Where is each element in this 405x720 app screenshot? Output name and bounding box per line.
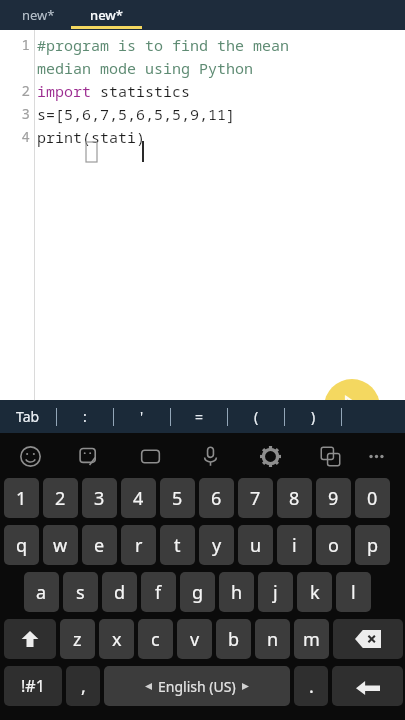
staticText: d — [114, 580, 126, 605]
button[interactable]: ' — [114, 400, 170, 433]
staticText: ) — [311, 407, 316, 426]
button[interactable]: 2 — [43, 478, 78, 518]
button[interactable]: b — [216, 619, 251, 659]
staticText: new* — [90, 6, 123, 24]
button[interactable]: 1 — [4, 478, 39, 518]
staticText: f — [155, 580, 162, 605]
button[interactable]: j — [258, 572, 293, 612]
button[interactable]: n — [255, 619, 290, 659]
staticText: s=[5,6,7,5,6,5,5,9,11] — [37, 104, 236, 124]
staticText: k — [310, 580, 320, 605]
button[interactable]: , — [66, 666, 100, 706]
staticText: median mode using Python — [37, 58, 254, 78]
staticText: #program is to find the mean — [37, 35, 290, 55]
button[interactable]: 0 — [355, 478, 390, 518]
button[interactable]: Tab — [0, 400, 56, 433]
button[interactable]: 4 — [121, 478, 156, 518]
staticText: , — [81, 674, 86, 699]
button[interactable]: Settings — [254, 440, 286, 472]
button[interactable]: o — [316, 525, 351, 565]
button[interactable]: Stickers — [72, 440, 104, 472]
button[interactable]: z — [60, 619, 95, 659]
button[interactable]: 8 — [277, 478, 312, 518]
button[interactable]: 7 — [238, 478, 273, 518]
button[interactable]: More options — [360, 440, 392, 472]
staticText: 9 — [328, 486, 339, 511]
staticText: 1 — [0, 35, 30, 54]
button[interactable]: 3 — [82, 478, 117, 518]
staticText: : — [83, 407, 87, 426]
staticText: u — [250, 533, 262, 558]
button[interactable]: x — [99, 619, 134, 659]
staticText: Tab — [16, 407, 40, 426]
button[interactable]: Shift — [4, 619, 56, 659]
button[interactable]: w — [43, 525, 78, 565]
button[interactable]: r — [121, 525, 156, 565]
button[interactable]: 9 — [316, 478, 351, 518]
button[interactable]: : — [57, 400, 113, 433]
button[interactable]: s — [63, 572, 98, 612]
button[interactable]: Voice input — [194, 440, 226, 472]
button[interactable]: p — [355, 525, 390, 565]
button[interactable]: Space — [104, 666, 290, 706]
button[interactable]: c — [138, 619, 173, 659]
button[interactable]: !#1 — [4, 666, 62, 706]
staticText: !#1 — [21, 675, 45, 697]
button[interactable]: f — [141, 572, 176, 612]
button[interactable]: Enter — [332, 666, 403, 706]
button[interactable]: 5 — [160, 478, 195, 518]
staticText: p — [367, 533, 379, 558]
button[interactable]: d — [102, 572, 137, 612]
button[interactable]: a — [24, 572, 59, 612]
button[interactable]: u — [238, 525, 273, 565]
staticText: print(stati) — [37, 127, 146, 147]
button[interactable]: g — [180, 572, 215, 612]
button[interactable]: GIF — [134, 440, 166, 472]
staticText: l — [351, 580, 356, 605]
staticText: o — [328, 533, 339, 558]
staticText: q — [16, 533, 28, 558]
staticText: 1 — [16, 486, 27, 511]
staticText: z — [73, 627, 82, 652]
staticText: ( — [254, 407, 259, 426]
staticText: x — [112, 627, 122, 652]
button[interactable]: e — [82, 525, 117, 565]
staticText: 3 — [94, 486, 105, 511]
button[interactable]: i — [277, 525, 312, 565]
staticText: 5 — [172, 486, 183, 511]
staticText: import statistics — [37, 81, 191, 101]
staticText: e — [94, 533, 105, 558]
button[interactable]: k — [297, 572, 332, 612]
button[interactable]: new* — [71, 0, 142, 30]
staticText: w — [53, 533, 68, 558]
button[interactable]: Translate — [314, 440, 346, 472]
staticText: g — [192, 580, 204, 605]
staticText: . — [309, 674, 314, 699]
staticText: h — [231, 580, 243, 605]
button[interactable]: l — [336, 572, 371, 612]
button[interactable]: Run — [324, 379, 380, 435]
staticText: 4 — [133, 486, 144, 511]
staticText: 3 — [0, 104, 30, 123]
button[interactable]: m — [294, 619, 329, 659]
staticText: j — [273, 580, 278, 605]
button[interactable]: = — [171, 400, 227, 433]
button[interactable]: y — [199, 525, 234, 565]
button[interactable]: 6 — [199, 478, 234, 518]
button[interactable]: ) — [285, 400, 341, 433]
staticText: English (US) — [158, 677, 236, 696]
staticText: 0 — [367, 486, 378, 511]
staticText: 7 — [250, 486, 261, 511]
button[interactable]: . — [294, 666, 328, 706]
button[interactable]: Backspace — [333, 619, 403, 659]
button[interactable]: q — [4, 525, 39, 565]
button[interactable]: ( — [228, 400, 284, 433]
button[interactable]: v — [177, 619, 212, 659]
staticText: b — [228, 627, 240, 652]
staticText: m — [303, 627, 320, 652]
button[interactable]: h — [219, 572, 254, 612]
button[interactable]: Emoji — [14, 440, 46, 472]
button[interactable]: t — [160, 525, 195, 565]
button[interactable]: new* — [5, 0, 71, 30]
